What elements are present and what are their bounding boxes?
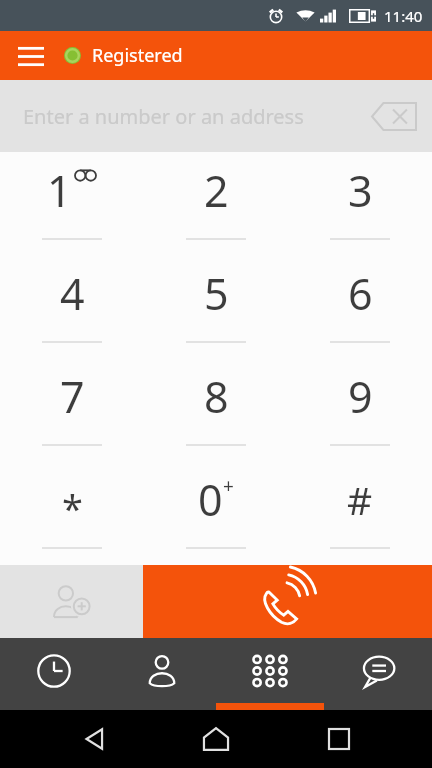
button[interactable]: 4 <box>0 256 144 359</box>
button[interactable]: Menu <box>8 33 54 79</box>
button[interactable]: Dialpad <box>216 638 324 710</box>
button[interactable]: Back <box>65 710 123 768</box>
button[interactable]: Messages <box>324 638 432 710</box>
staticText: 1 <box>47 161 72 220</box>
staticText: # <box>347 473 373 526</box>
button[interactable]: 1 <box>0 152 144 256</box>
staticText: 0 <box>198 470 223 529</box>
staticText: 9 <box>348 367 373 426</box>
button[interactable]: * <box>0 462 144 565</box>
staticText: Registered <box>92 43 183 68</box>
staticText: + <box>223 473 234 499</box>
staticText: 7 <box>60 367 85 426</box>
button[interactable]: Call <box>143 565 432 638</box>
button[interactable]: 8 <box>144 359 288 462</box>
button[interactable]: 5 <box>144 256 288 359</box>
staticText: 2 <box>204 161 229 220</box>
staticText: Enter a number or an address <box>23 103 304 130</box>
button[interactable]: 7 <box>0 359 144 462</box>
button[interactable]: 2 <box>144 152 288 256</box>
button[interactable]: Contacts <box>108 638 216 710</box>
button[interactable]: Recent apps <box>310 710 368 768</box>
button[interactable]: Add contact <box>0 565 143 638</box>
button[interactable]: 3 <box>288 152 432 256</box>
button[interactable]: 6 <box>288 256 432 359</box>
staticText: 8 <box>204 367 229 426</box>
staticText: 11:40 <box>384 6 423 26</box>
staticText: 4 <box>60 264 85 323</box>
staticText: 5 <box>204 264 229 323</box>
button[interactable]: 9 <box>288 359 432 462</box>
staticText: * <box>62 482 83 534</box>
button[interactable]: Delete <box>365 92 423 140</box>
button[interactable]: 0 <box>144 462 288 565</box>
button[interactable]: Recent calls <box>0 638 108 710</box>
staticText: 6 <box>348 264 373 323</box>
button[interactable]: # <box>288 462 432 565</box>
button[interactable]: Home <box>187 710 245 768</box>
staticText: 3 <box>348 161 373 220</box>
